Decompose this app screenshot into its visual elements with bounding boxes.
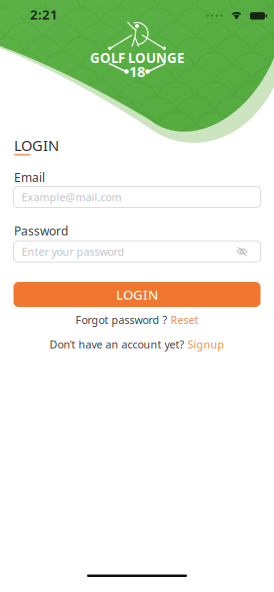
staticText: Reset [170,313,198,327]
button[interactable]: Signup [187,337,224,351]
staticText: Example@mail.com [21,190,121,204]
staticText: Don't have an account yet? [49,337,184,351]
button[interactable]: Reset [170,313,198,327]
button[interactable]: LOGIN [13,282,260,307]
staticText: Email [14,169,45,185]
staticText: Signup [187,337,224,351]
button[interactable]: Password [13,241,260,262]
staticText: LOGIN [14,135,59,155]
staticText: 18 [129,61,145,81]
staticText: GOLF LOUNGE [90,49,184,67]
staticText: Enter your password [21,244,124,259]
staticText: Password [14,223,68,239]
staticText: Forgot password ? [75,313,167,327]
staticText: LOGIN [116,286,158,303]
staticText: 2:21 [30,5,58,23]
button[interactable]: Email [13,186,260,207]
